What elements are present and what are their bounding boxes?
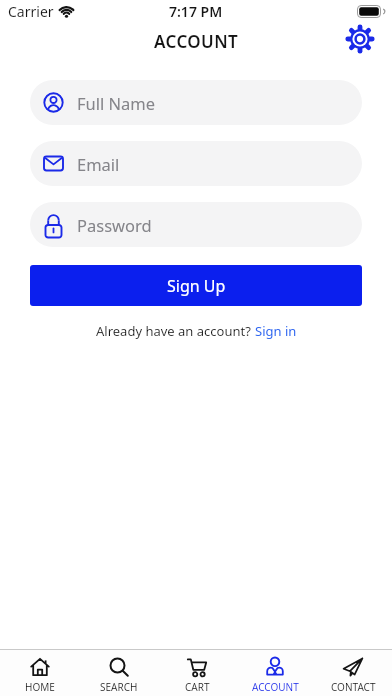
button[interactable] xyxy=(344,23,376,55)
staticText: ACCOUNT xyxy=(154,30,239,53)
button[interactable]: CART xyxy=(158,650,236,696)
button[interactable]: Sign Up xyxy=(30,265,362,306)
staticText: Email xyxy=(77,153,120,175)
staticText: Password xyxy=(77,214,152,236)
staticText: 7:17 PM xyxy=(169,2,223,21)
staticText: HOME xyxy=(25,680,55,694)
button[interactable]: CONTACT xyxy=(314,650,392,696)
button[interactable]: Full Name xyxy=(30,80,362,125)
staticText: ACCOUNT xyxy=(252,680,299,694)
button[interactable]: Sign in xyxy=(255,322,297,340)
staticText: SEARCH xyxy=(100,680,138,694)
staticText: Carrier xyxy=(8,2,54,21)
staticText: Already have an account? xyxy=(96,322,255,340)
button[interactable]: ACCOUNT xyxy=(236,650,314,696)
button[interactable]: SEARCH xyxy=(79,650,158,696)
staticText: CART xyxy=(185,680,210,694)
button[interactable]: Password xyxy=(30,202,362,247)
button[interactable]: Email xyxy=(30,141,362,186)
staticText: Full Name xyxy=(77,92,156,114)
staticText: CONTACT xyxy=(331,680,376,694)
staticText: Sign in xyxy=(255,322,297,340)
button[interactable]: HOME xyxy=(0,650,79,696)
staticText: Sign Up xyxy=(167,275,226,297)
